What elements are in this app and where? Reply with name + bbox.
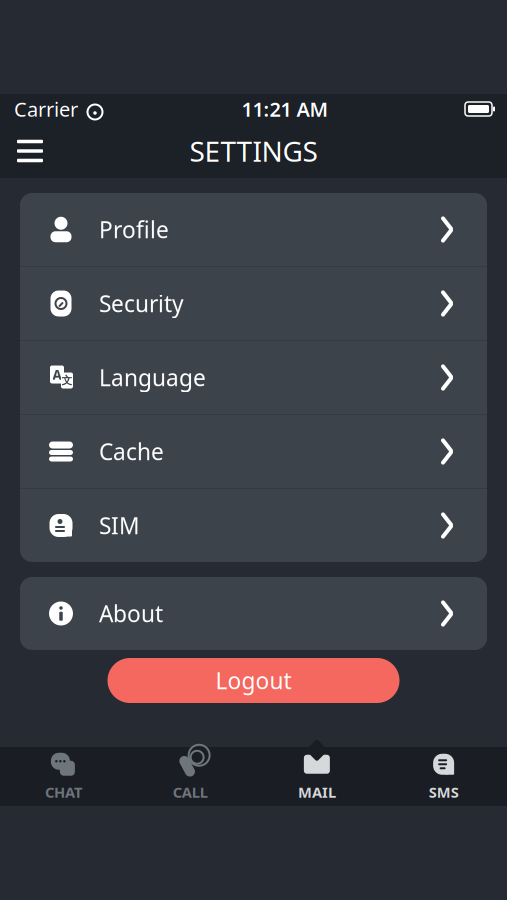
button[interactable]: Logout: [107, 658, 399, 703]
staticText: About: [99, 598, 163, 628]
staticText: SIM: [99, 510, 140, 540]
staticText: Cache: [99, 436, 164, 466]
button[interactable]: A: [20, 341, 487, 414]
staticText: CALL: [173, 782, 208, 802]
button[interactable]: Profile: [20, 193, 487, 266]
button[interactable]: Cache: [20, 415, 487, 488]
button[interactable]: CALL: [127, 747, 254, 806]
staticText: A: [52, 366, 61, 383]
button[interactable]: SIM: [20, 489, 487, 562]
staticText: Language: [99, 362, 206, 392]
staticText: Profile: [99, 214, 169, 244]
button[interactable]: CHAT: [0, 747, 127, 806]
staticText: MAIL: [298, 782, 336, 802]
button[interactable]: About: [20, 577, 487, 650]
button[interactable]: SMS: [380, 747, 507, 806]
staticText: Security: [99, 288, 184, 318]
staticText: 11:21 AM: [241, 96, 328, 122]
staticText: Logout: [215, 665, 291, 695]
button[interactable]: Security: [20, 267, 487, 340]
staticText: SETTINGS: [189, 132, 317, 170]
staticText: CHAT: [45, 782, 82, 802]
staticText: 文: [61, 374, 72, 387]
staticText: SMS: [429, 782, 459, 802]
button[interactable]: MAIL: [253, 747, 380, 806]
button[interactable]: Menu: [6, 127, 54, 175]
staticText: Carrier: [14, 96, 78, 122]
